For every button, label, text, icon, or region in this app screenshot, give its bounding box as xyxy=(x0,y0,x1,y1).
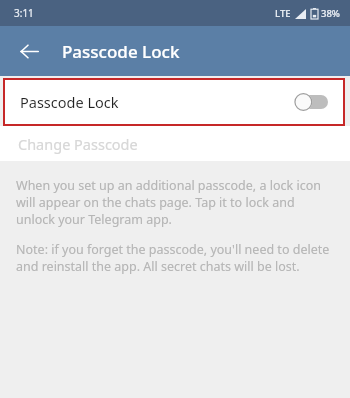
staticText: Passcode Lock xyxy=(20,92,119,112)
staticText: Passcode Lock xyxy=(62,40,180,63)
button[interactable]: Back xyxy=(10,32,48,70)
staticText: 38% xyxy=(321,7,340,20)
staticText: LTE xyxy=(275,7,291,20)
staticText: Note: if you forget the passcode, you'll… xyxy=(16,241,334,275)
button[interactable]: Passcode Lock xyxy=(5,80,343,124)
staticText: When you set up an additional passcode, … xyxy=(16,177,334,228)
staticText: Change Passcode xyxy=(18,134,138,154)
button[interactable]: Change Passcode xyxy=(0,126,350,161)
staticText: 3:11 xyxy=(14,6,34,20)
